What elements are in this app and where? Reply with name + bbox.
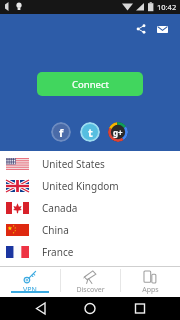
button[interactable]: Share [134, 22, 148, 36]
staticText: f [59, 125, 64, 140]
button[interactable]: United Kingdom [0, 175, 180, 197]
staticText: Discover [76, 285, 105, 295]
staticText: France [42, 245, 74, 259]
staticText: China [42, 223, 69, 237]
button[interactable]: Back [30, 297, 52, 320]
button[interactable]: Facebook [51, 122, 71, 142]
staticText: United Kingdom [42, 179, 119, 193]
button[interactable]: China [0, 219, 180, 241]
staticText: Canada [42, 201, 78, 215]
button[interactable]: Discover [60, 266, 120, 297]
staticText: United States [42, 157, 105, 171]
button[interactable]: France [0, 241, 180, 263]
button[interactable]: Twitter [80, 122, 100, 142]
button[interactable]: Recents [129, 297, 151, 320]
button[interactable]: Home [79, 297, 101, 320]
staticText: Apps [142, 285, 159, 295]
staticText: Connect [72, 78, 109, 91]
button[interactable]: Canada [0, 197, 180, 219]
staticText: g+ [113, 127, 123, 138]
staticText: t [88, 125, 93, 140]
button[interactable]: Connect [37, 72, 143, 96]
button[interactable]: United States [0, 153, 180, 175]
button[interactable]: VPN [0, 266, 60, 297]
button[interactable]: Google Plus [108, 122, 128, 142]
staticText: 10:42 [157, 2, 177, 12]
button[interactable]: Apps [120, 266, 180, 297]
staticText: VPN [23, 285, 37, 295]
button[interactable]: Email [155, 22, 169, 36]
